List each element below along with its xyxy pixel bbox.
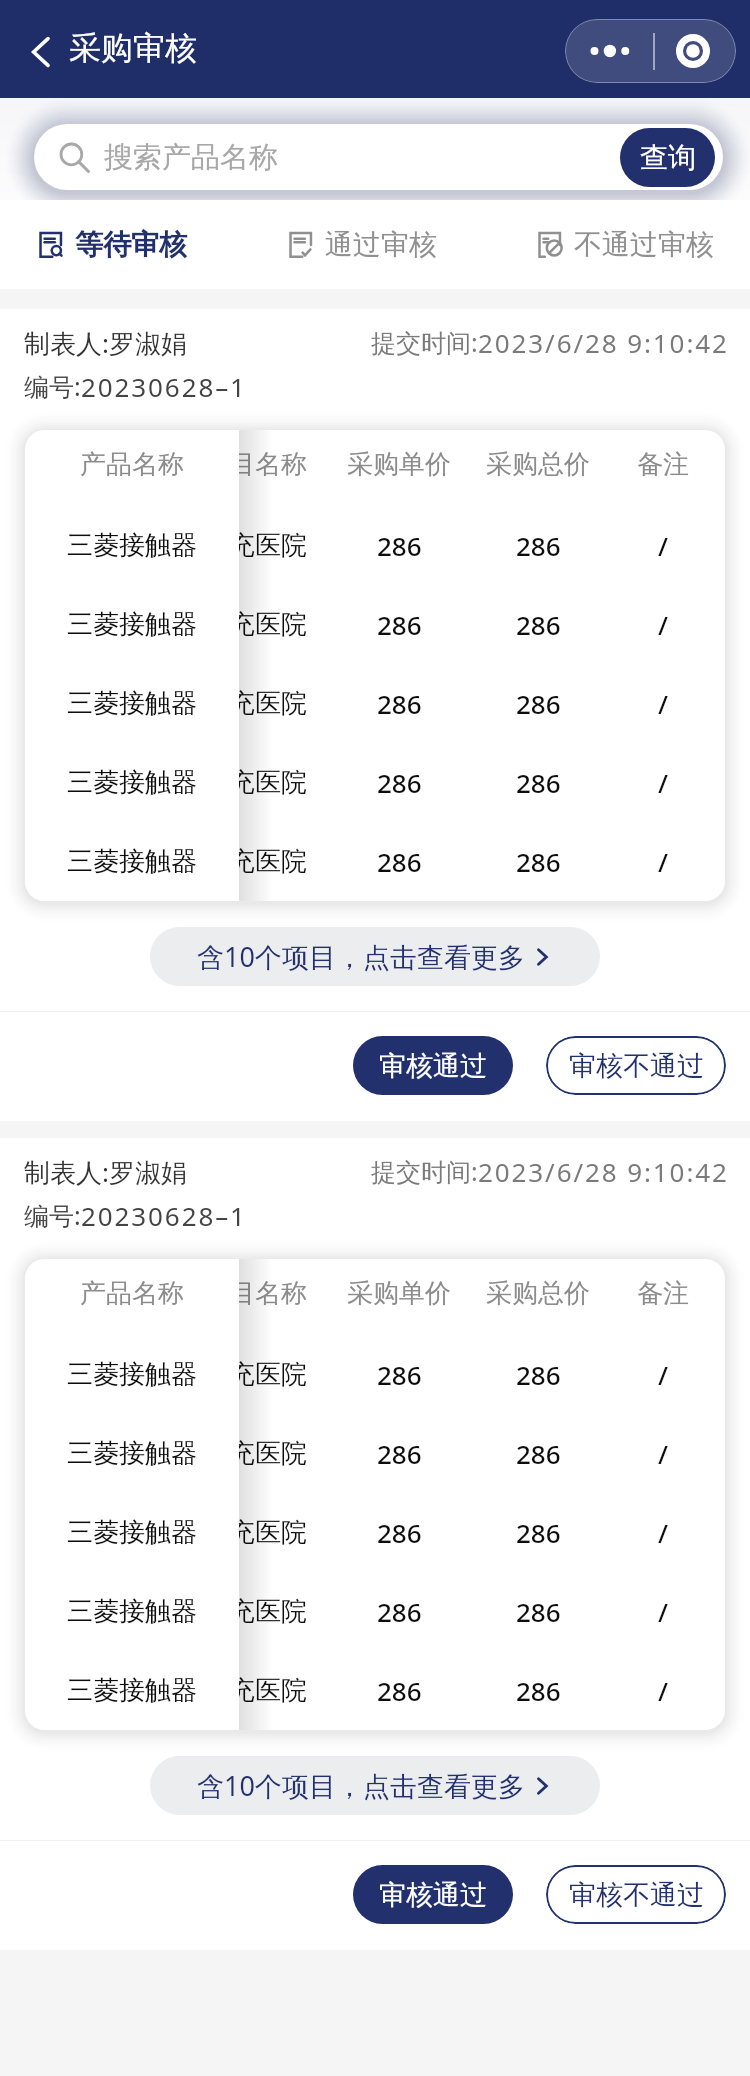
staticText: 286 bbox=[377, 686, 422, 721]
staticText: 编号: bbox=[24, 1198, 81, 1232]
staticText: 286 bbox=[516, 686, 561, 721]
staticText: 提交时间: bbox=[371, 325, 478, 359]
staticText: 三菱接触器 bbox=[67, 845, 197, 878]
staticText: / bbox=[658, 844, 669, 879]
staticText: 南充医院 bbox=[203, 1358, 307, 1391]
staticText: 等待审核 bbox=[75, 227, 187, 262]
staticText: 审核通过 bbox=[379, 1878, 487, 1912]
button[interactable]: 审核不通过 bbox=[546, 1865, 726, 1924]
staticText: 286 bbox=[377, 844, 422, 879]
staticText: 286 bbox=[377, 1515, 422, 1550]
staticText: 2023/6/28 9:10:42 bbox=[478, 1154, 729, 1189]
staticText: 20230628–1 bbox=[81, 1198, 247, 1233]
staticText: 采购总价 bbox=[486, 1277, 590, 1310]
staticText: 南充医院 bbox=[203, 608, 307, 641]
button[interactable]: More options bbox=[565, 19, 653, 83]
staticText: 采购单价 bbox=[347, 1277, 451, 1310]
staticText: 20230628–1 bbox=[81, 369, 247, 404]
staticText: 含10个项目，点击查看更多 bbox=[197, 938, 525, 975]
staticText: 通过审核 bbox=[325, 227, 437, 262]
staticText: 286 bbox=[377, 1673, 422, 1708]
staticText: / bbox=[658, 1357, 669, 1392]
button[interactable]: 含10个项目，点击查看更多 bbox=[150, 1756, 600, 1815]
staticText: 审核通过 bbox=[379, 1049, 487, 1083]
staticText: 南充医院 bbox=[203, 845, 307, 878]
staticText: 286 bbox=[516, 1436, 561, 1471]
staticText: 三菱接触器 bbox=[67, 1516, 197, 1549]
staticText: 制表人:罗淑娟 bbox=[24, 1154, 187, 1190]
staticText: / bbox=[658, 1673, 669, 1708]
staticText: 286 bbox=[516, 765, 561, 800]
staticText: 286 bbox=[516, 844, 561, 879]
staticText: 286 bbox=[377, 1436, 422, 1471]
staticText: 项目名称 bbox=[203, 1277, 307, 1310]
staticText: 286 bbox=[377, 528, 422, 563]
staticText: 采购单价 bbox=[347, 448, 451, 481]
staticText: 南充医院 bbox=[203, 687, 307, 720]
staticText: 含10个项目，点击查看更多 bbox=[197, 1767, 525, 1804]
staticText: 产品名称 bbox=[80, 1277, 184, 1310]
staticText: 审核不通过 bbox=[569, 1878, 704, 1912]
button[interactable]: 通过审核 bbox=[288, 200, 437, 289]
staticText: 三菱接触器 bbox=[67, 529, 197, 562]
staticText: 286 bbox=[377, 1594, 422, 1629]
staticText: 备注 bbox=[637, 1277, 689, 1310]
staticText: 286 bbox=[377, 765, 422, 800]
staticText: 三菱接触器 bbox=[67, 1595, 197, 1628]
staticText: 286 bbox=[516, 1357, 561, 1392]
button[interactable]: 审核不通过 bbox=[546, 1036, 726, 1095]
staticText: 编号: bbox=[24, 369, 81, 403]
staticText: / bbox=[658, 607, 669, 642]
staticText: / bbox=[658, 1515, 669, 1550]
staticText: 2023/6/28 9:10:42 bbox=[478, 325, 729, 360]
staticText: 三菱接触器 bbox=[67, 608, 197, 641]
button[interactable]: 含10个项目，点击查看更多 bbox=[150, 927, 600, 986]
staticText: 三菱接触器 bbox=[67, 1674, 197, 1707]
button[interactable]: 审核通过 bbox=[353, 1865, 513, 1924]
staticText: 三菱接触器 bbox=[67, 766, 197, 799]
button[interactable]: Back bbox=[16, 25, 64, 73]
staticText: 南充医院 bbox=[203, 529, 307, 562]
staticText: 南充医院 bbox=[203, 1437, 307, 1470]
staticText: 286 bbox=[516, 528, 561, 563]
staticText: 备注 bbox=[637, 448, 689, 481]
staticText: 三菱接触器 bbox=[67, 1358, 197, 1391]
staticText: 产品名称 bbox=[80, 448, 184, 481]
staticText: / bbox=[658, 528, 669, 563]
button[interactable]: 等待审核 bbox=[38, 200, 187, 289]
button[interactable]: 查询 bbox=[620, 128, 715, 187]
staticText: 项目名称 bbox=[203, 448, 307, 481]
staticText: 南充医院 bbox=[203, 1674, 307, 1707]
staticText: 三菱接触器 bbox=[67, 1437, 197, 1470]
staticText: 南充医院 bbox=[203, 1595, 307, 1628]
staticText: 制表人:罗淑娟 bbox=[24, 325, 187, 361]
staticText: / bbox=[658, 686, 669, 721]
staticText: 286 bbox=[516, 607, 561, 642]
staticText: 286 bbox=[377, 1357, 422, 1392]
button[interactable]: 审核通过 bbox=[353, 1036, 513, 1095]
staticText: 286 bbox=[516, 1515, 561, 1550]
staticText: 查询 bbox=[640, 140, 696, 175]
staticText: 286 bbox=[516, 1594, 561, 1629]
staticText: / bbox=[658, 765, 669, 800]
staticText: 审核不通过 bbox=[569, 1049, 704, 1083]
staticText: 采购总价 bbox=[486, 448, 590, 481]
button[interactable]: 不通过审核 bbox=[537, 200, 714, 289]
staticText: 286 bbox=[377, 607, 422, 642]
staticText: 三菱接触器 bbox=[67, 687, 197, 720]
staticText: 采购审核 bbox=[69, 28, 197, 68]
staticText: 286 bbox=[516, 1673, 561, 1708]
staticText: 不通过审核 bbox=[574, 227, 714, 262]
staticText: / bbox=[658, 1436, 669, 1471]
button[interactable]: Mini program menu bbox=[655, 19, 736, 83]
staticText: 提交时间: bbox=[371, 1154, 478, 1188]
staticText: 搜索产品名称 bbox=[104, 139, 278, 176]
staticText: / bbox=[658, 1594, 669, 1629]
staticText: 南充医院 bbox=[203, 766, 307, 799]
staticText: 南充医院 bbox=[203, 1516, 307, 1549]
